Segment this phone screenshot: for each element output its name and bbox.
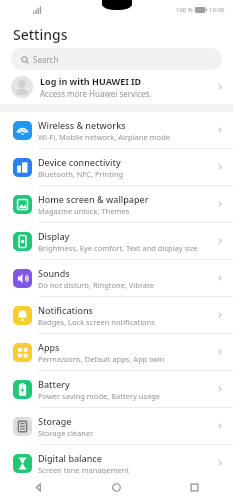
staticText: 10:00 <box>209 6 225 14</box>
staticText: Sounds <box>38 267 70 279</box>
staticText: Apps <box>38 341 60 353</box>
staticText: Brightness, Eye comfort, Text and displa… <box>38 243 198 253</box>
staticText: Digital balance <box>38 452 102 464</box>
staticText: Badges, Lock screen notifications <box>38 317 155 327</box>
staticText: Bluetooth, NFC, Printing <box>38 169 124 179</box>
button[interactable]: Home screen & wallpaper <box>0 186 233 223</box>
staticText: Settings <box>13 25 68 44</box>
other: Open <box>215 236 225 246</box>
staticText: Screen time management <box>38 465 130 475</box>
staticText: Device connectivity <box>38 156 121 168</box>
other: Open <box>215 310 225 320</box>
button[interactable]: Notifications <box>0 297 233 334</box>
button[interactable]: Back <box>0 474 77 500</box>
other: Open <box>215 384 225 394</box>
staticText: Magazine unlock, Themes <box>38 206 130 216</box>
staticText: Permissions, Default apps, App twin <box>38 354 165 364</box>
button[interactable]: Digital balance <box>0 445 233 481</box>
button[interactable]: Display <box>0 223 233 260</box>
staticText: Power saving mode, Battery usage <box>38 391 161 401</box>
staticText: Access more Huawei services. <box>40 88 152 99</box>
button[interactable]: Recents <box>155 474 233 500</box>
button[interactable]: Search <box>11 48 222 70</box>
other: Open <box>215 421 225 431</box>
staticText: 100 % <box>176 6 193 14</box>
other: Open <box>215 458 225 468</box>
staticText: Wi-Fi, Mobile network, Airplane mode <box>38 132 170 142</box>
button[interactable]: Sounds <box>0 260 233 297</box>
button[interactable]: Home <box>77 474 155 500</box>
staticText: Home screen & wallpaper <box>38 193 149 205</box>
staticText: Notifications <box>38 304 93 316</box>
other: Open <box>215 162 225 172</box>
staticText: Storage cleaner <box>38 428 94 438</box>
button[interactable]: Storage <box>0 408 233 445</box>
button[interactable]: Apps <box>0 334 233 371</box>
staticText: Display <box>38 230 70 242</box>
button[interactable]: Battery <box>0 371 233 408</box>
staticText: Log in with HUAWEI ID <box>40 75 142 87</box>
other: Open <box>215 273 225 283</box>
other: Open <box>215 347 225 357</box>
staticText: Storage <box>38 415 72 427</box>
button[interactable]: Log in with HUAWEI ID <box>0 70 233 104</box>
staticText: Do not disturb, Ringtone, Vibrate <box>38 280 155 290</box>
button[interactable]: Device connectivity <box>0 149 233 186</box>
button[interactable]: Wireless & networks <box>0 112 233 149</box>
staticText: Wireless & networks <box>38 119 126 131</box>
staticText: Search <box>33 54 59 65</box>
other: Open <box>215 199 225 209</box>
other: Open <box>215 82 225 92</box>
other: Open <box>215 125 225 135</box>
staticText: Battery <box>38 378 70 390</box>
